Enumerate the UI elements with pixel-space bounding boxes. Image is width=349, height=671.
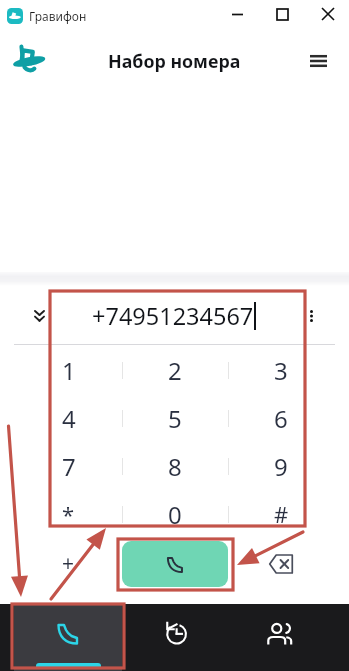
- button[interactable]: Maximize: [260, 0, 305, 28]
- staticText: 4: [62, 402, 76, 435]
- staticText: #: [274, 499, 289, 529]
- button[interactable]: 3: [228, 347, 334, 394]
- button[interactable]: 6: [228, 394, 334, 442]
- staticText: Набор номера: [108, 49, 241, 73]
- staticText: +74951234567: [92, 300, 254, 332]
- staticText: 0: [168, 498, 182, 531]
- staticText: 7: [62, 450, 76, 483]
- button[interactable]: 1: [15, 347, 122, 394]
- staticText: Гравифон: [29, 8, 87, 24]
- staticText: 6: [274, 402, 288, 435]
- button[interactable]: Dialer: [14, 604, 122, 671]
- staticText: 1: [62, 354, 76, 387]
- button[interactable]: Contacts: [228, 604, 349, 671]
- staticText: 3: [274, 354, 288, 387]
- staticText: 8: [168, 450, 182, 483]
- button[interactable]: #: [228, 490, 334, 538]
- button[interactable]: 8: [122, 442, 228, 490]
- button[interactable]: More options: [296, 301, 326, 331]
- button[interactable]: 7: [15, 442, 122, 490]
- button[interactable]: Close: [305, 0, 349, 28]
- staticText: *: [62, 499, 75, 529]
- button[interactable]: 9: [228, 442, 334, 490]
- button[interactable]: 4: [15, 394, 122, 442]
- button[interactable]: History: [122, 604, 228, 671]
- staticText: 9: [274, 450, 288, 483]
- staticText: +: [62, 549, 75, 578]
- button[interactable]: 0: [122, 490, 228, 538]
- button[interactable]: Call: [122, 541, 228, 587]
- button[interactable]: Expand: [22, 299, 56, 333]
- button[interactable]: Backspace: [228, 538, 334, 589]
- button[interactable]: Menu: [296, 39, 340, 83]
- button[interactable]: Plus: [15, 538, 122, 589]
- staticText: 5: [168, 402, 182, 435]
- staticText: 2: [168, 354, 182, 387]
- button[interactable]: 5: [122, 394, 228, 442]
- button[interactable]: Minimize: [215, 0, 260, 28]
- button[interactable]: *: [15, 490, 122, 538]
- button[interactable]: 2: [122, 347, 228, 394]
